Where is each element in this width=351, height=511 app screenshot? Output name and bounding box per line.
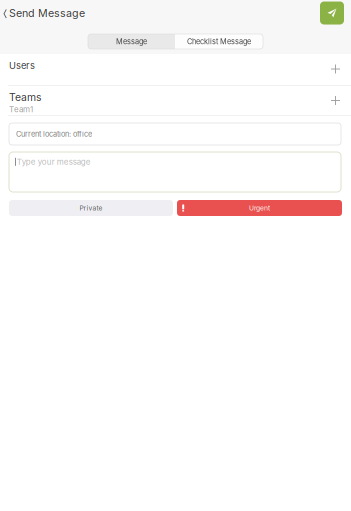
button[interactable]: Message (88, 34, 175, 49)
button[interactable]: Teams (0, 86, 351, 115)
staticText: Teams (9, 91, 41, 104)
staticText: Private (79, 204, 102, 212)
button[interactable]: Current location: office (9, 123, 341, 145)
button[interactable]: Send Message (0, 1, 93, 25)
staticText: Checklist Message (187, 37, 251, 46)
button[interactable]: Urgent (177, 200, 342, 216)
staticText: Team1 (9, 105, 33, 114)
staticText: Type your message (17, 157, 91, 167)
staticText: Message (116, 37, 147, 46)
staticText: Urgent (249, 204, 270, 212)
staticText: Current location: office (16, 130, 92, 138)
button[interactable]: Users (0, 54, 351, 85)
button[interactable]: Private (9, 200, 173, 216)
staticText: Users (9, 60, 35, 71)
button[interactable]: Checklist Message (175, 34, 263, 49)
button[interactable]: Send (320, 1, 344, 24)
staticText: Send Message (9, 6, 85, 19)
